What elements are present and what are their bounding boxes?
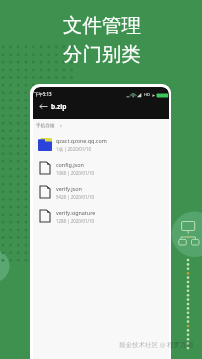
staticText: 1068 | 2020/01/10 [56,170,95,176]
staticText: 掘金技术社区 ◎ 程罗万相 [119,340,194,349]
staticText: verify.signature [56,209,96,216]
staticText: 分门别类 [63,42,141,66]
button[interactable]: config.json [33,156,169,180]
staticText: verify.json [56,185,82,192]
button[interactable]: verify.json [33,180,169,204]
staticText: config.json [56,161,84,168]
staticText: b.zip [51,102,67,111]
staticText: qzact.qzone.qq.com [56,137,107,144]
staticText: 手机存储 [36,123,55,129]
button[interactable]: verify.signature [33,204,169,228]
staticText: 1项 | 2020/01/10 [56,146,91,152]
staticText: 1288 | 2020/01/10 [56,218,95,224]
staticText: 5428 | 2020/01/10 [56,194,95,200]
button[interactable]: qzact.qzone.qq.com [33,132,169,156]
staticText: 文件管理 [63,13,141,37]
button[interactable]: Back [37,100,49,112]
button[interactable]: Network transfer [0,0,202,359]
staticText: HD [144,92,151,98]
staticText: 下午5:13 [34,91,52,97]
